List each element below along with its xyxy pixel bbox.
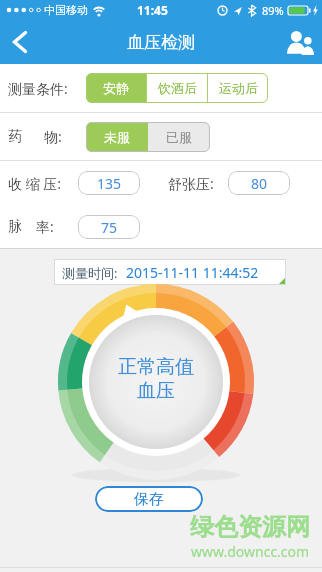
staticText: 测量条件:	[8, 79, 68, 98]
staticText: 血压	[137, 379, 175, 403]
staticText: 89%	[262, 3, 284, 18]
staticText: 2015-11-11 11:44:52	[126, 263, 259, 282]
staticText: 80	[251, 174, 268, 193]
staticText: 未服	[104, 129, 130, 145]
staticText: 收 缩 压:	[8, 174, 62, 193]
staticText: 脉	[8, 218, 22, 236]
staticText: 药	[8, 128, 22, 146]
staticText: 物:	[44, 127, 62, 146]
button[interactable]: 75	[78, 215, 140, 239]
staticText: 135	[97, 174, 122, 193]
staticText: 率:	[36, 217, 54, 236]
staticText: 已服	[166, 129, 192, 145]
button[interactable]: 测量时间:	[54, 259, 286, 285]
button[interactable]: 运动后	[208, 73, 268, 103]
staticText: 运动后	[219, 80, 258, 96]
button[interactable]: 饮酒后	[147, 73, 207, 103]
button[interactable]: 已服	[148, 122, 210, 152]
staticText: 11:45	[137, 2, 168, 18]
staticText: www.downcc.com	[191, 542, 310, 561]
staticText: 测量时间:	[62, 264, 118, 282]
staticText: 正常高值	[118, 355, 194, 379]
staticText: 75	[101, 218, 118, 237]
button[interactable]: 安静	[86, 73, 146, 103]
staticText: 中国移动	[44, 3, 88, 17]
staticText: 绿色资源网	[190, 512, 310, 542]
staticText: 血压检测	[127, 32, 195, 53]
button[interactable]	[278, 20, 322, 64]
staticText: 饮酒后	[158, 80, 197, 96]
button[interactable]: 135	[78, 171, 140, 195]
staticText: 舒张压:	[168, 174, 214, 193]
button[interactable]: 未服	[86, 122, 148, 152]
staticText: 保存	[134, 490, 164, 509]
button[interactable]	[0, 20, 40, 64]
staticText: 安静	[103, 80, 129, 96]
button[interactable]: 保存	[95, 486, 203, 512]
button[interactable]: 80	[228, 171, 290, 195]
